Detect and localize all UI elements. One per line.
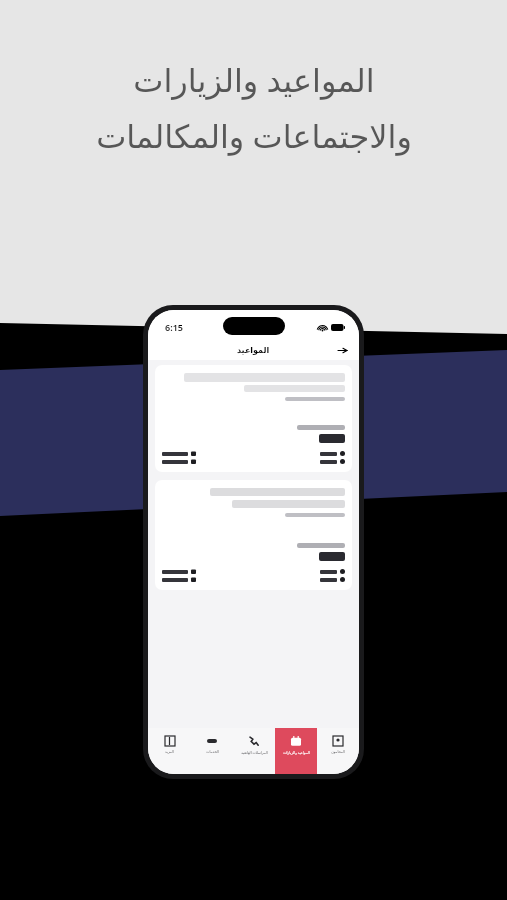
staticText: المواعيد والزيارات bbox=[133, 58, 375, 102]
button[interactable]: المحامون bbox=[317, 728, 359, 774]
staticText: الخدمات bbox=[206, 750, 219, 754]
button[interactable] bbox=[319, 552, 345, 561]
staticText: المواعيد والزيارات bbox=[283, 750, 310, 755]
button[interactable] bbox=[155, 365, 352, 472]
staticText: المراسلات الهاتفية bbox=[241, 750, 268, 755]
staticText: المزيد bbox=[165, 750, 174, 754]
button[interactable] bbox=[155, 480, 352, 590]
staticText: 6:15 bbox=[165, 321, 183, 333]
staticText: المحامون bbox=[331, 750, 345, 754]
button[interactable] bbox=[319, 434, 345, 443]
button[interactable]: المزيد bbox=[148, 728, 191, 774]
button[interactable]: Back bbox=[335, 343, 349, 357]
staticText: المواعيد bbox=[237, 346, 270, 355]
button[interactable]: المواعيد والزيارات bbox=[275, 728, 317, 774]
button[interactable]: الخدمات bbox=[191, 728, 233, 774]
staticText: والاجتماعات والمكالمات bbox=[96, 114, 412, 158]
button[interactable]: المراسلات الهاتفية bbox=[233, 728, 275, 774]
